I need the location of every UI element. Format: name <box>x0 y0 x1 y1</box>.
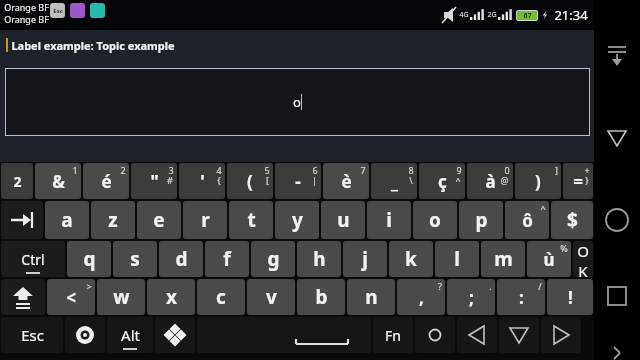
staticText: ' <box>200 170 205 193</box>
button[interactable]: ! <box>547 279 593 315</box>
button[interactable]: Left <box>457 317 497 353</box>
staticText: Fn <box>385 326 401 345</box>
button[interactable]: q <box>67 241 111 277</box>
staticText: n <box>365 284 378 310</box>
button[interactable]: u <box>321 201 365 239</box>
button[interactable]: m <box>481 241 525 277</box>
button[interactable]: f <box>205 241 249 277</box>
button[interactable]: o <box>5 68 590 136</box>
button[interactable]: à <box>467 163 513 199</box>
button[interactable]: b <box>297 279 345 315</box>
button[interactable]: x <box>147 279 195 315</box>
staticText: a <box>61 207 73 233</box>
button[interactable]: Home <box>597 200 637 240</box>
staticText: ^ <box>540 202 546 214</box>
staticText: 2 <box>13 172 22 191</box>
button[interactable]: z <box>91 201 135 239</box>
button[interactable]: Right <box>541 317 581 353</box>
button[interactable]: Expand <box>600 346 634 360</box>
button[interactable]: c <box>197 279 245 315</box>
staticText: 8 <box>408 164 414 176</box>
button[interactable]: g <box>251 241 295 277</box>
staticText: ] <box>555 164 558 176</box>
staticText: ) <box>535 170 541 193</box>
staticText: 21:34 <box>554 6 588 24</box>
staticText: ô <box>522 209 533 232</box>
button[interactable]: j <box>343 241 387 277</box>
staticText: x <box>166 284 177 310</box>
button[interactable]: r <box>183 201 227 239</box>
button[interactable]: $ <box>551 201 593 239</box>
button[interactable]: , <box>397 279 445 315</box>
button[interactable]: Esc <box>1 317 63 353</box>
staticText: Esc <box>21 325 44 345</box>
button[interactable]: Hide keyboard <box>597 36 637 76</box>
button[interactable]: s <box>113 241 157 277</box>
button[interactable]: Tab <box>1 201 43 239</box>
button[interactable]: i <box>367 201 411 239</box>
staticText: [ <box>266 174 269 186</box>
button[interactable]: Fn <box>373 317 413 353</box>
button[interactable]: < <box>47 279 95 315</box>
button[interactable]: _ <box>371 163 417 199</box>
button[interactable]: n <box>347 279 395 315</box>
button[interactable]: o <box>413 201 457 239</box>
button[interactable]: y <box>275 201 319 239</box>
button[interactable]: è <box>323 163 369 199</box>
button[interactable]: Space <box>197 317 371 353</box>
button[interactable]: Dot <box>415 317 455 353</box>
staticText: Orange BF <box>4 1 49 13</box>
button[interactable]: t <box>229 201 273 239</box>
button[interactable]: Ctrl <box>1 241 65 277</box>
button[interactable]: = <box>563 163 593 199</box>
staticText: Ctrl <box>21 250 45 269</box>
button[interactable]: OK <box>573 241 593 277</box>
button[interactable]: Shift <box>1 279 45 315</box>
staticText: 3 <box>168 164 174 176</box>
button[interactable]: Switch language <box>155 317 195 353</box>
staticText: u <box>337 207 350 233</box>
button[interactable]: Down <box>499 317 539 353</box>
staticText: < <box>66 286 76 309</box>
button[interactable]: w <box>97 279 145 315</box>
button[interactable]: " <box>131 163 177 199</box>
button[interactable]: ) <box>515 163 561 199</box>
button[interactable]: ç <box>419 163 465 199</box>
staticText: ; <box>469 286 474 309</box>
staticText: c <box>216 284 226 310</box>
button[interactable]: é <box>83 163 129 199</box>
button[interactable]: h <box>297 241 341 277</box>
staticText: r <box>201 207 210 233</box>
button[interactable]: k <box>389 241 433 277</box>
staticText: ( <box>247 170 253 193</box>
button[interactable]: l <box>435 241 479 277</box>
button[interactable]: ' <box>179 163 225 199</box>
staticText: | <box>312 174 317 186</box>
button[interactable]: : <box>497 279 545 315</box>
button[interactable]: ô <box>505 201 549 239</box>
button[interactable]: - <box>275 163 321 199</box>
button[interactable]: e <box>137 201 181 239</box>
button[interactable]: Alt <box>107 317 153 353</box>
staticText: Label example: Topic example <box>11 38 175 53</box>
button[interactable]: 2 <box>1 163 33 199</box>
staticText: y <box>292 207 303 233</box>
button[interactable]: d <box>159 241 203 277</box>
staticText: @ <box>500 174 509 186</box>
button[interactable]: Back <box>597 118 637 158</box>
button[interactable]: ù <box>527 241 571 277</box>
staticText: ! <box>568 286 573 309</box>
staticText: f <box>223 246 231 272</box>
staticText: _ <box>391 170 398 193</box>
staticText: ù <box>543 248 555 271</box>
button[interactable]: p <box>459 201 503 239</box>
button[interactable]: Settings <box>65 317 105 353</box>
button[interactable]: v <box>247 279 295 315</box>
button[interactable]: & <box>35 163 81 199</box>
button[interactable]: Recent apps <box>597 276 637 316</box>
staticText: i <box>386 207 392 233</box>
button[interactable]: ; <box>447 279 495 315</box>
staticText: OK <box>573 241 593 277</box>
button[interactable]: ( <box>227 163 273 199</box>
button[interactable]: a <box>45 201 89 239</box>
